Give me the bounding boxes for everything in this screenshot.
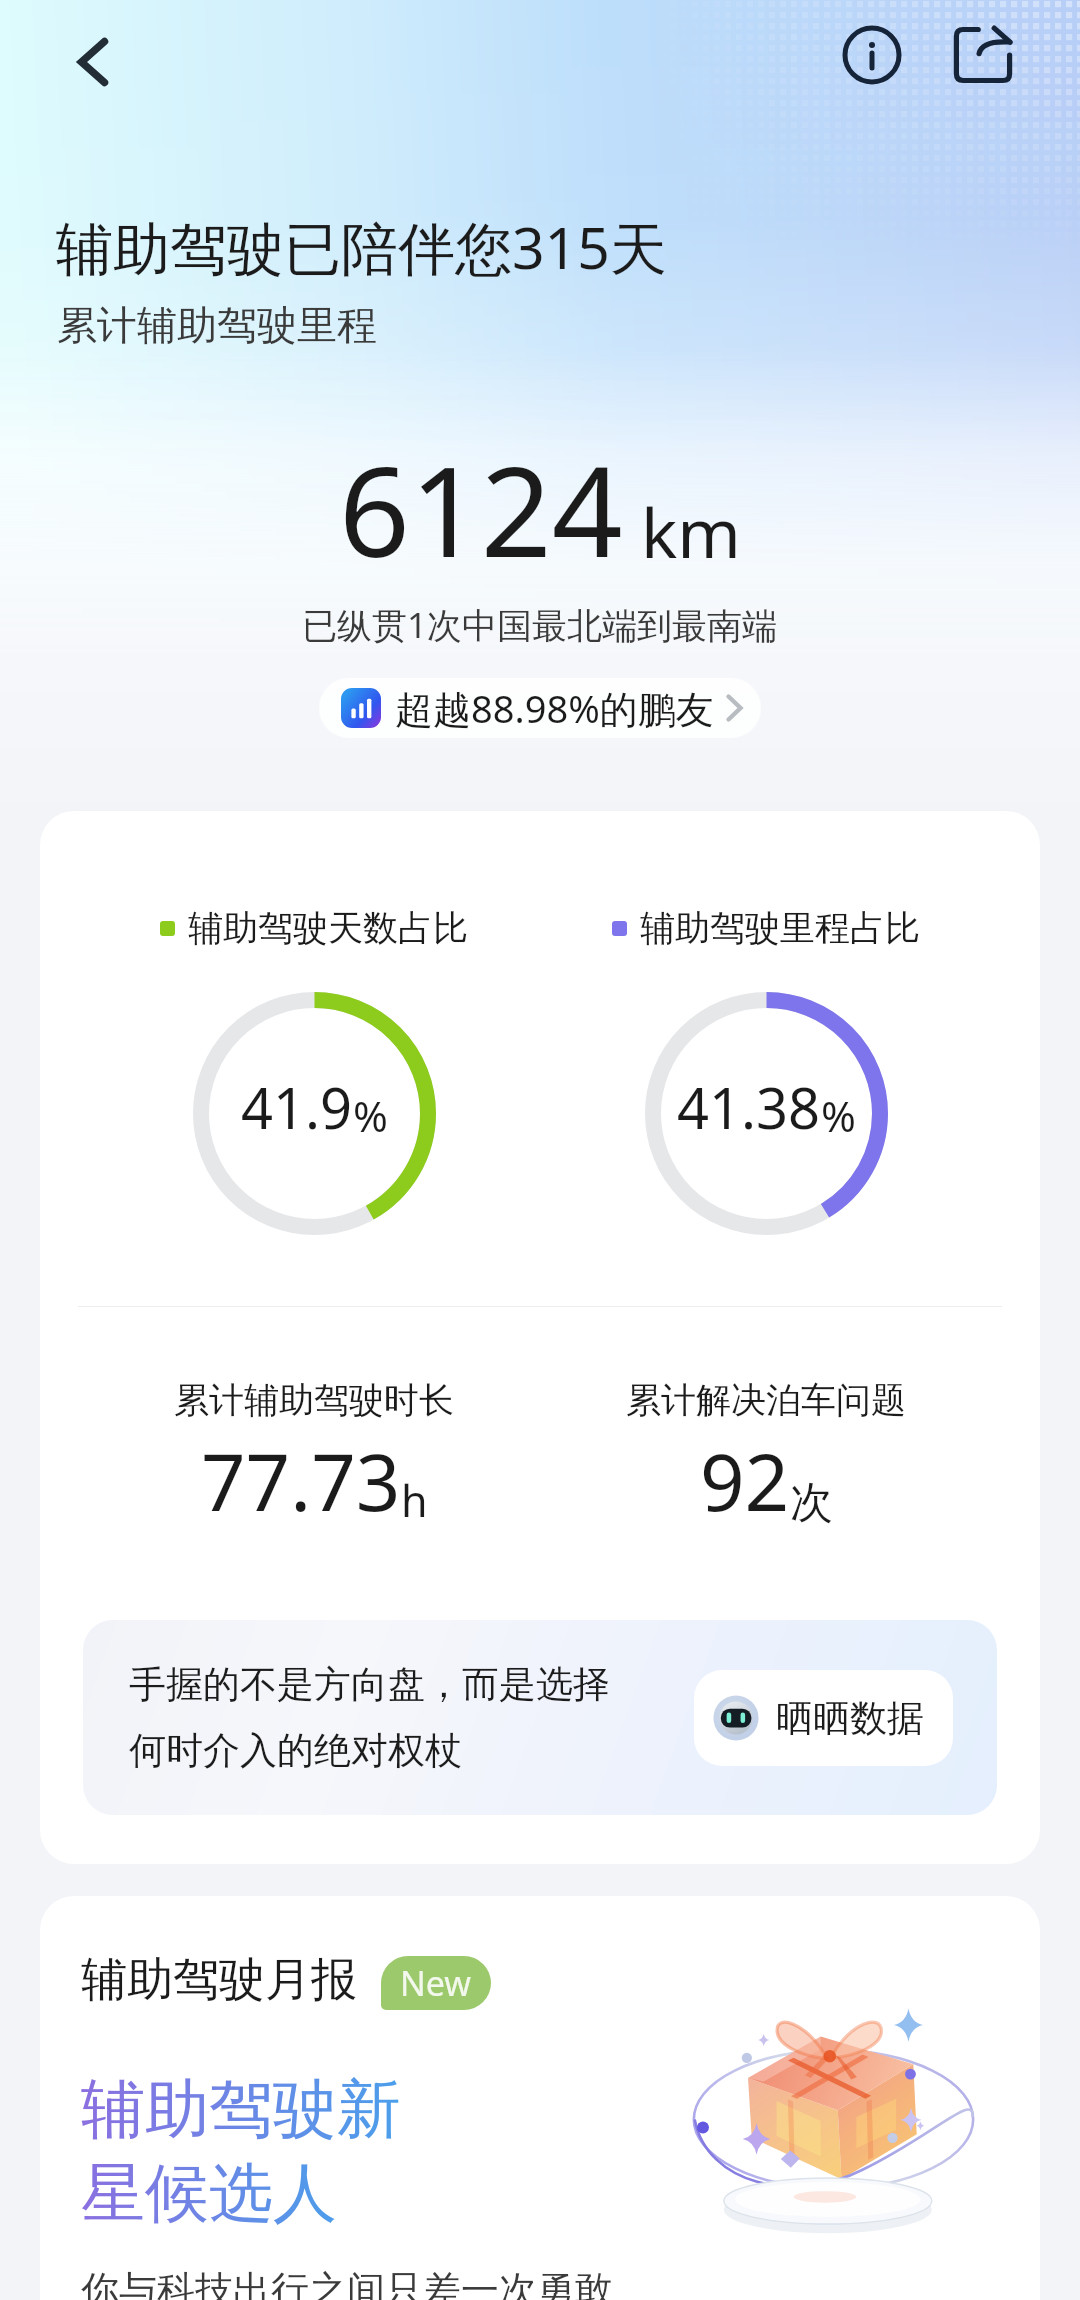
button[interactable]: Back <box>57 26 129 98</box>
staticText: 辅助驾驶已陪伴您315天 <box>56 208 667 286</box>
staticText: 何时介入的绝对权杖 <box>129 1727 462 1774</box>
staticText: h <box>401 1471 428 1530</box>
button[interactable]: 晒晒数据 <box>694 1670 953 1766</box>
staticText: 手握的不是方向盘，而是选择 <box>129 1661 610 1708</box>
staticText: 6124 <box>339 424 623 593</box>
staticText: % <box>353 1087 388 1144</box>
button[interactable]: Info <box>830 13 914 97</box>
staticText: 累计辅助驾驶里程 <box>57 300 377 350</box>
staticText: % <box>821 1087 856 1144</box>
button[interactable]: Share <box>941 13 1025 97</box>
staticText: New <box>400 1960 472 2006</box>
staticText: 次 <box>790 1476 833 1530</box>
staticText: 41.9 <box>241 1069 353 1145</box>
button[interactable]: 超越88.98%的鹏友 <box>319 678 761 738</box>
staticText: km <box>641 485 741 578</box>
button[interactable]: 辅助驾驶月报 <box>40 1896 1040 2300</box>
staticText: 晒晒数据 <box>776 1695 924 1742</box>
staticText: 辅助驾驶新 <box>81 2069 401 2150</box>
staticText: 辅助驾驶里程占比 <box>640 906 920 950</box>
staticText: 你与科技出行之间只差一次勇敢 <box>81 2266 613 2300</box>
staticText: 辅助驾驶月报 <box>81 1951 357 2009</box>
staticText: 已纵贯1次中国最北端到最南端 <box>302 601 778 649</box>
staticText: 41.38 <box>677 1069 821 1145</box>
staticText: 超越88.98%的鹏友 <box>395 682 714 734</box>
staticText: 累计辅助驾驶时长 <box>174 1378 454 1422</box>
staticText: 星候选人 <box>81 2153 337 2234</box>
staticText: 92 <box>700 1428 790 1534</box>
staticText: 累计解决泊车问题 <box>626 1378 906 1422</box>
staticText: 辅助驾驶天数占比 <box>188 906 468 950</box>
staticText: 77.73 <box>201 1428 401 1534</box>
